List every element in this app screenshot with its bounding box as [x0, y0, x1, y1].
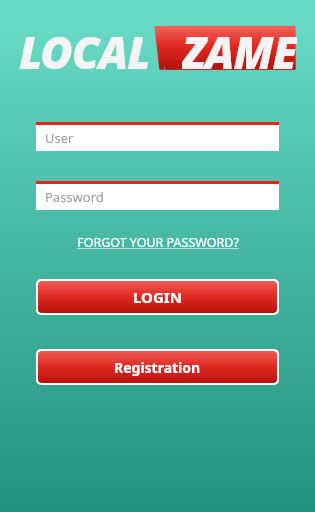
button[interactable]: Password — [36, 181, 279, 210]
button[interactable]: User — [36, 122, 279, 151]
button[interactable]: Registration — [38, 351, 277, 383]
button[interactable]: LOGIN — [38, 281, 277, 313]
staticText: LOCAL — [19, 22, 150, 74]
staticText: FORGOT YOUR PASSWORD? — [77, 234, 239, 251]
staticText: Registration — [114, 358, 201, 377]
staticText: Password — [45, 188, 104, 206]
staticText: User — [45, 129, 74, 147]
staticText: LOGIN — [133, 287, 182, 307]
staticText: ZAME — [182, 22, 297, 74]
button[interactable]: FORGOT YOUR PASSWORD? — [71, 230, 245, 255]
